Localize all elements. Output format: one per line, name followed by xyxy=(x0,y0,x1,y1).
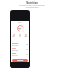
button[interactable]: Fat xyxy=(19,34,21,37)
button[interactable]: Breakfast xyxy=(12,42,28,47)
staticText: Add meal xyxy=(17,60,24,62)
button[interactable]: Protein xyxy=(24,34,28,37)
staticText: Salmon, rice xyxy=(12,55,18,56)
staticText: Breakfast xyxy=(12,43,19,45)
button[interactable]: Lunch xyxy=(12,47,28,52)
button[interactable]: Add meal xyxy=(12,59,28,62)
staticText: Nutrition xyxy=(26,1,38,4)
staticText: Track daily calories, macros and meals i… xyxy=(19,4,45,8)
button[interactable]: Carbs xyxy=(12,34,15,37)
staticText: Dinner xyxy=(12,53,17,55)
staticText: Fat xyxy=(19,36,21,37)
staticText: Oats, banana xyxy=(12,45,19,46)
staticText: Chicken bowl xyxy=(12,50,19,51)
staticText: Carbs xyxy=(12,36,15,37)
button[interactable]: Dinner xyxy=(12,52,28,57)
staticText: 1248 xyxy=(18,27,22,29)
staticText: Lunch xyxy=(12,48,16,50)
staticText: 540 xyxy=(26,49,28,50)
staticText: 320 xyxy=(26,44,28,45)
staticText: Today xyxy=(18,22,22,24)
staticText: 420 xyxy=(26,54,28,55)
staticText: kcal xyxy=(19,29,21,30)
staticText: Protein xyxy=(24,36,28,37)
